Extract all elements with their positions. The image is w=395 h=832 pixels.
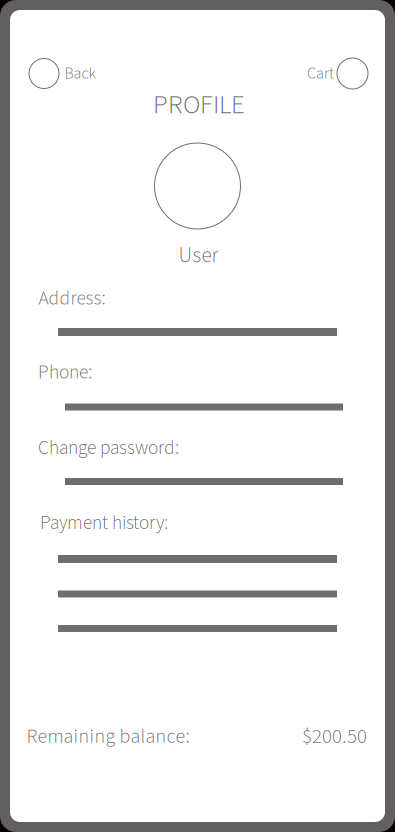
staticText: Remaining balance: <box>26 722 189 751</box>
staticText: Change password: <box>38 434 179 462</box>
button[interactable]: Back <box>29 57 97 89</box>
staticText: Payment history: <box>40 509 168 537</box>
staticText: PROFILE <box>153 86 245 124</box>
staticText: User <box>178 240 218 271</box>
staticText: Back <box>64 62 95 85</box>
staticText: $200.50 <box>302 722 367 751</box>
staticText: Cart <box>307 62 334 85</box>
staticText: Phone: <box>38 359 92 386</box>
button[interactable]: Cart <box>304 57 368 89</box>
staticText: Address: <box>38 285 105 312</box>
